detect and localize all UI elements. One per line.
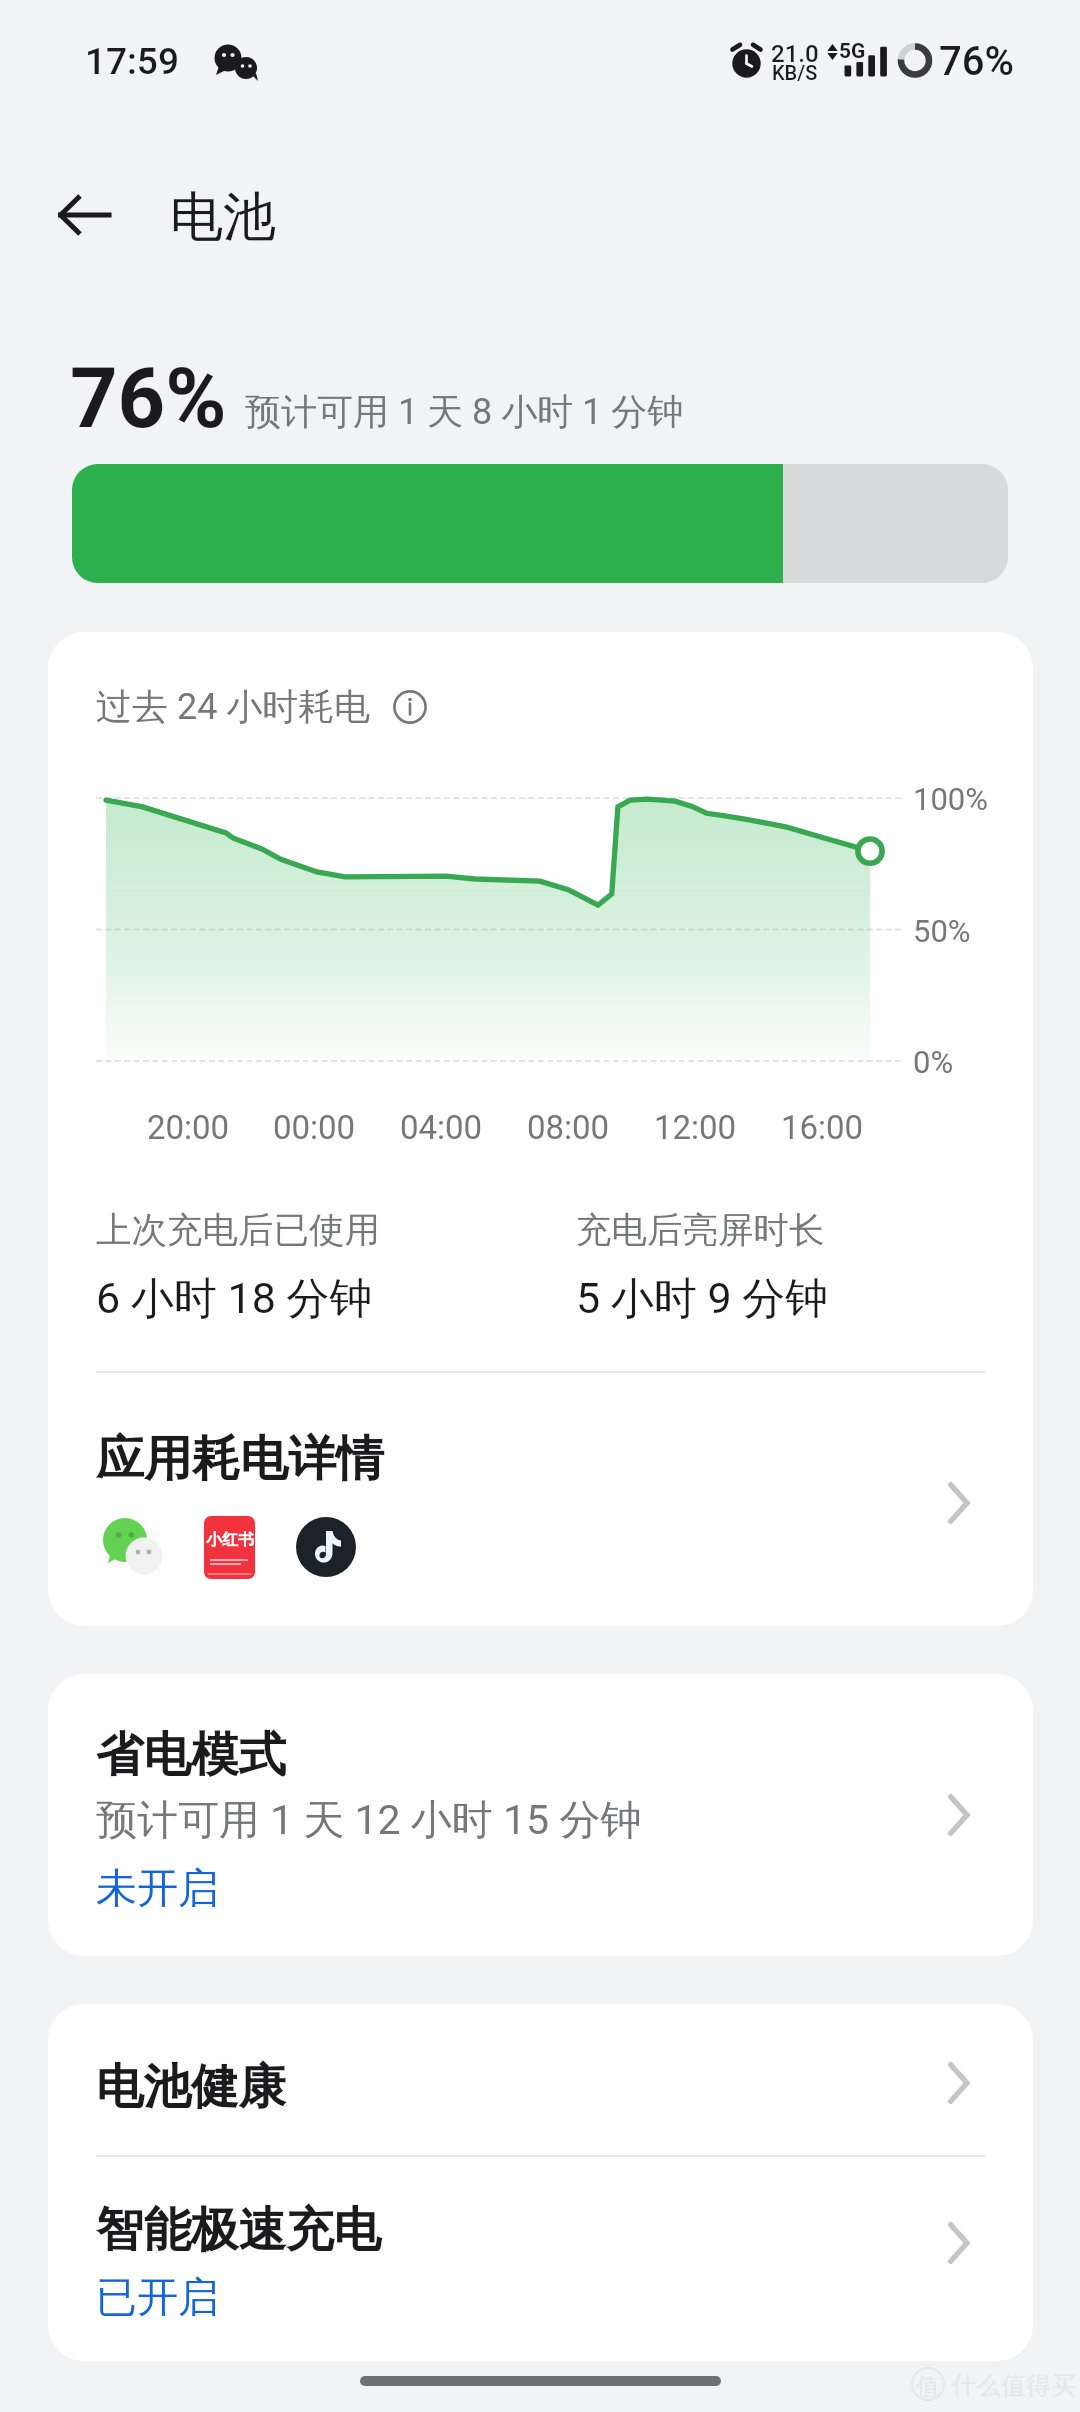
staticText: 100% <box>913 781 988 817</box>
staticText: 电池健康 <box>96 2057 286 2117</box>
staticText: 智能极速充电 <box>96 2200 381 2260</box>
staticText: 电池 <box>170 184 276 251</box>
button[interactable]: 电池健康 <box>48 2004 1033 2155</box>
staticText: 预计可用 1 天 12 小时 15 分钟 <box>96 1795 642 1847</box>
button[interactable]: 应用耗电详情 <box>48 1373 1033 1626</box>
staticText: 20:00 <box>118 1108 258 1147</box>
staticText: 5 小时 9 分钟 <box>576 1272 829 1326</box>
staticText: 5G <box>839 39 866 64</box>
staticText: 04:00 <box>371 1108 511 1147</box>
staticText: 17:59 <box>85 40 179 83</box>
staticText: 00:00 <box>244 1108 384 1147</box>
staticText: 12:00 <box>625 1108 765 1147</box>
staticText: 值 <box>916 2372 940 2402</box>
staticText: 过去 24 小时耗电 <box>96 684 371 729</box>
staticText: 已开启 <box>96 2272 219 2324</box>
staticText: 小红书 <box>206 1530 254 1550</box>
staticText: KB/S <box>772 61 818 84</box>
staticText: 76% <box>939 38 1014 85</box>
staticText: 6 小时 18 分钟 <box>96 1272 373 1326</box>
staticText: 50% <box>913 913 971 949</box>
staticText: 0% <box>913 1044 954 1080</box>
button[interactable]: 智能极速充电 <box>48 2156 1033 2361</box>
staticText: 充电后亮屏时长 <box>576 1208 825 1253</box>
staticText: 16:00 <box>752 1108 892 1147</box>
staticText: 省电模式 <box>96 1725 286 1785</box>
staticText: 08:00 <box>498 1108 638 1147</box>
staticText: 21.0 <box>771 40 819 68</box>
staticText: 76% <box>70 350 227 447</box>
button[interactable]: 省电模式 <box>48 1674 1033 1956</box>
staticText: 什么值得买 <box>951 2370 1076 2401</box>
staticText: 未开启 <box>96 1863 219 1915</box>
staticText: 预计可用 1 天 8 小时 1 分钟 <box>245 389 684 434</box>
staticText: 上次充电后已使用 <box>96 1208 380 1253</box>
staticText: 应用耗电详情 <box>96 1429 384 1489</box>
button[interactable]: Back <box>36 167 132 263</box>
button[interactable]: About battery usage <box>393 690 427 724</box>
